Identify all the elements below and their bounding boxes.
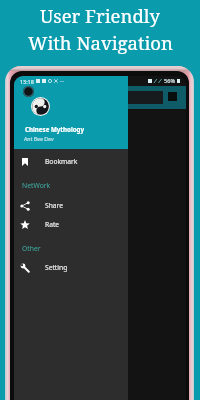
staticText: Setting: [45, 263, 68, 272]
button[interactable]: Bookmark: [14, 152, 128, 171]
staticText: Chinese Mythology: [25, 125, 85, 133]
staticText: Ant Bee Dev: [24, 135, 54, 142]
staticText: NetWork: [22, 181, 51, 190]
staticText: User Friendly: [40, 3, 160, 28]
staticText: With Navigation: [28, 30, 173, 55]
staticText: Rate: [45, 220, 60, 229]
button[interactable]: Setting: [14, 258, 128, 277]
staticText: Bookmark: [45, 157, 78, 166]
staticText: Other: [22, 244, 41, 253]
staticText: 56%: [164, 77, 176, 85]
staticText: 13:18: [20, 78, 34, 85]
staticText: Share: [45, 201, 63, 210]
button[interactable]: Rate: [14, 215, 128, 234]
button[interactable]: Share: [14, 196, 128, 215]
